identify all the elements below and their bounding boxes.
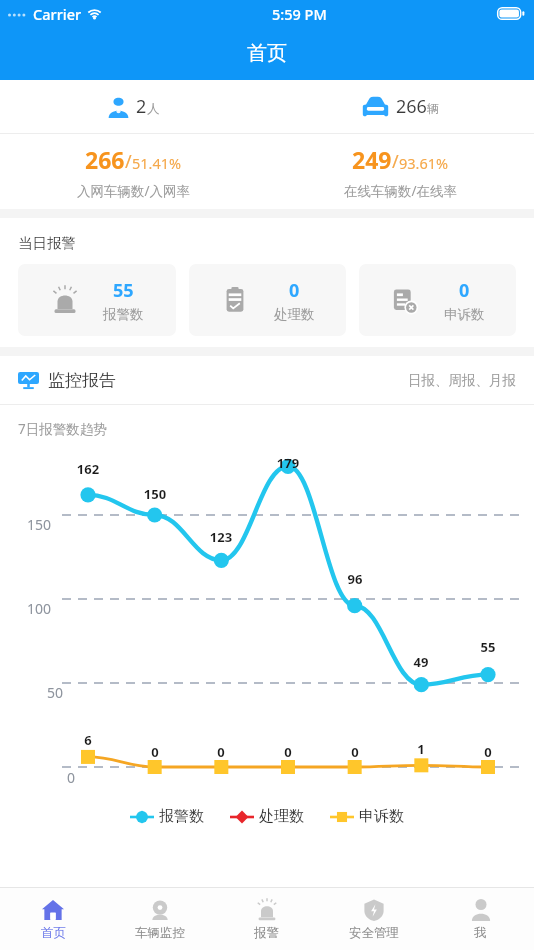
- staticText: 日报、周报、月报: [408, 372, 516, 389]
- staticText: 249: [352, 144, 392, 175]
- button[interactable]: 报警数: [130, 807, 204, 826]
- staticText: 55: [468, 638, 508, 656]
- button[interactable]: 249: [267, 134, 534, 209]
- staticText: 我: [474, 925, 487, 941]
- staticText: 150: [135, 485, 175, 503]
- staticText: 入网车辆数/入网率: [77, 182, 191, 200]
- staticText: 266: [85, 144, 125, 175]
- staticText: 申诉数: [359, 807, 404, 826]
- staticText: Carrier: [33, 4, 82, 24]
- staticText: /: [125, 149, 132, 174]
- button[interactable]: 首页: [0, 888, 106, 950]
- staticText: /: [392, 149, 399, 174]
- button[interactable]: 安全管理: [320, 888, 427, 950]
- button[interactable]: 车辆监控: [106, 888, 213, 950]
- staticText: 在线车辆数/在线率: [344, 182, 458, 200]
- staticText: 50: [29, 683, 63, 702]
- staticText: 首页: [41, 925, 66, 941]
- staticText: 49: [401, 653, 441, 671]
- staticText: 7日报警数趋势: [18, 420, 107, 438]
- staticText: 5:59 PM: [272, 4, 327, 24]
- button[interactable]: 55: [18, 264, 176, 336]
- button[interactable]: 266: [267, 80, 534, 133]
- staticText: 266: [396, 94, 427, 119]
- staticText: 55: [113, 278, 134, 303]
- staticText: 安全管理: [349, 925, 399, 941]
- staticText: 报警: [254, 925, 279, 941]
- staticText: 当日报警: [18, 234, 76, 252]
- staticText: 150: [17, 515, 51, 534]
- button[interactable]: 我: [427, 888, 534, 950]
- staticText: 0: [468, 743, 508, 761]
- staticText: 首页: [247, 41, 287, 66]
- staticText: 93.61%: [399, 153, 449, 173]
- staticText: 179: [268, 454, 308, 472]
- staticText: 0: [201, 743, 241, 761]
- staticText: 0: [268, 743, 308, 761]
- staticText: 车辆监控: [135, 925, 185, 941]
- staticText: 51.41%: [132, 153, 182, 173]
- staticText: 123: [201, 528, 241, 546]
- staticText: 0: [41, 768, 75, 787]
- button[interactable]: 266: [0, 134, 267, 209]
- staticText: 报警数: [159, 807, 204, 826]
- staticText: 96: [335, 570, 375, 588]
- button[interactable]: 0: [359, 264, 516, 336]
- staticText: 申诉数: [444, 306, 485, 323]
- staticText: 监控报告: [48, 370, 116, 391]
- staticText: 0: [335, 743, 375, 761]
- button[interactable]: 处理数: [230, 807, 304, 826]
- staticText: 处理数: [259, 807, 304, 826]
- staticText: 处理数: [274, 306, 315, 323]
- staticText: 162: [68, 460, 108, 478]
- staticText: 1: [401, 740, 441, 758]
- staticText: 报警数: [103, 306, 144, 323]
- button[interactable]: 申诉数: [330, 807, 404, 826]
- staticText: 辆: [427, 101, 440, 117]
- button[interactable]: 0: [189, 264, 346, 336]
- staticText: 0: [459, 278, 470, 303]
- staticText: 0: [135, 743, 175, 761]
- button[interactable]: 监控报告: [0, 356, 534, 404]
- staticText: 0: [289, 278, 300, 303]
- button[interactable]: 2: [0, 80, 267, 133]
- staticText: 2: [136, 94, 147, 119]
- staticText: 100: [17, 599, 51, 618]
- staticText: 人: [147, 101, 160, 117]
- staticText: 6: [68, 731, 108, 749]
- button[interactable]: 报警: [213, 888, 320, 950]
